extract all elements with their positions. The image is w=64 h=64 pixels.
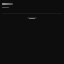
- button[interactable]: [2, 3, 62, 5]
- button[interactable]: Primary action: [27, 17, 37, 19]
- button[interactable]: [2, 7, 62, 8]
